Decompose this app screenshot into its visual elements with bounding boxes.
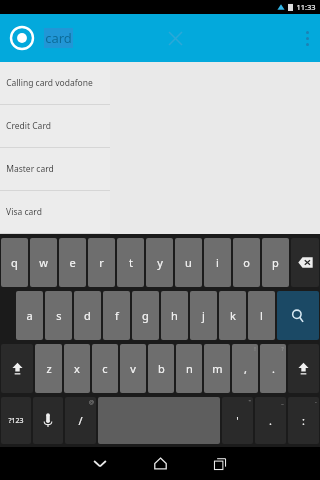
staticText: card xyxy=(45,29,72,47)
button[interactable]: w xyxy=(30,238,57,287)
button[interactable]: ' xyxy=(222,397,253,444)
button[interactable]: r xyxy=(88,238,115,287)
button[interactable]: More options xyxy=(294,14,320,62)
button[interactable]: q xyxy=(1,238,28,287)
button[interactable]: x xyxy=(64,344,90,393)
staticText: g xyxy=(142,308,149,323)
staticText: _ xyxy=(281,398,284,405)
button[interactable]: o xyxy=(233,238,260,287)
button[interactable]: p xyxy=(262,238,289,287)
staticText: Visa card xyxy=(6,206,42,218)
staticText: ?123 xyxy=(8,416,24,426)
button[interactable]: s xyxy=(45,291,72,340)
button[interactable]: card xyxy=(44,14,155,62)
staticText: z xyxy=(46,361,52,376)
button[interactable]: f xyxy=(103,291,130,340)
staticText: : xyxy=(302,413,305,428)
button[interactable]: Calling card vodafone xyxy=(0,62,110,105)
staticText: c xyxy=(102,361,108,376)
button[interactable]: k xyxy=(219,291,246,340)
button[interactable]: d xyxy=(74,291,101,340)
staticText: v xyxy=(130,361,136,376)
button[interactable]: u xyxy=(175,238,202,287)
staticText: h xyxy=(171,308,178,323)
staticText: Credit Card xyxy=(6,120,51,132)
staticText: y xyxy=(157,255,163,270)
button[interactable]: Recent apps xyxy=(190,447,250,480)
button[interactable]: Master card xyxy=(0,148,110,191)
staticText: ' xyxy=(236,413,239,428)
button[interactable]: / xyxy=(65,397,96,444)
staticText: , xyxy=(244,361,247,376)
button[interactable]: Search app icon xyxy=(0,16,44,60)
staticText: i xyxy=(216,255,219,270)
staticText: j xyxy=(202,308,205,323)
button[interactable]: Voice input xyxy=(33,397,63,444)
staticText: l xyxy=(260,308,263,323)
staticText: r xyxy=(99,255,104,270)
button[interactable]: v xyxy=(120,344,146,393)
button[interactable]: h xyxy=(161,291,188,340)
staticText: . xyxy=(269,413,272,428)
staticText: / xyxy=(78,413,83,428)
button[interactable]: Search xyxy=(277,291,319,340)
button[interactable]: l xyxy=(248,291,275,340)
staticText: 11:33 xyxy=(296,2,316,12)
staticText: d xyxy=(84,308,91,323)
staticText: k xyxy=(230,308,236,323)
button[interactable]: j xyxy=(190,291,217,340)
button[interactable]: e xyxy=(59,238,86,287)
staticText: " xyxy=(248,398,251,405)
button[interactable]: m xyxy=(204,344,230,393)
staticText: w xyxy=(39,255,48,270)
button[interactable]: Shift xyxy=(288,344,319,393)
button[interactable]: . xyxy=(260,344,286,393)
button[interactable]: t xyxy=(117,238,144,287)
button[interactable]: Backspace xyxy=(291,238,319,287)
button[interactable]: Hide keyboard xyxy=(70,447,130,480)
staticText: o xyxy=(243,255,250,270)
button[interactable]: i xyxy=(204,238,231,287)
staticText: @ xyxy=(89,398,94,405)
staticText: t xyxy=(129,255,133,270)
button[interactable]: Credit Card xyxy=(0,105,110,148)
button[interactable]: Clear query xyxy=(155,14,195,62)
staticText: n xyxy=(186,361,193,376)
button[interactable]: , xyxy=(232,344,258,393)
button[interactable]: a xyxy=(16,291,43,340)
button[interactable]: c xyxy=(92,344,118,393)
staticText: Calling card vodafone xyxy=(6,77,93,89)
button[interactable]: g xyxy=(132,291,159,340)
button[interactable]: ?123 xyxy=(1,397,31,444)
button[interactable]: n xyxy=(176,344,202,393)
button[interactable]: Visa card xyxy=(0,191,110,234)
staticText: b xyxy=(158,361,165,376)
button[interactable]: Home xyxy=(130,447,190,480)
staticText: s xyxy=(56,308,62,323)
button[interactable]: . xyxy=(255,397,286,444)
staticText: a xyxy=(26,308,33,323)
staticText: m xyxy=(212,361,223,376)
staticText: - xyxy=(315,398,317,405)
button[interactable]: : xyxy=(288,397,319,444)
button[interactable]: y xyxy=(146,238,173,287)
staticText: . xyxy=(272,361,275,376)
staticText: x xyxy=(74,361,80,376)
staticText: e xyxy=(69,255,76,270)
button[interactable]: Shift xyxy=(1,344,33,393)
staticText: p xyxy=(272,255,279,270)
staticText: Master card xyxy=(6,163,54,175)
staticText: ! xyxy=(254,345,256,352)
button[interactable]: z xyxy=(35,344,62,393)
staticText: u xyxy=(185,255,192,270)
staticText: f xyxy=(115,308,119,323)
button[interactable]: b xyxy=(148,344,174,393)
staticText: ? xyxy=(281,345,284,352)
staticText: q xyxy=(11,255,18,270)
